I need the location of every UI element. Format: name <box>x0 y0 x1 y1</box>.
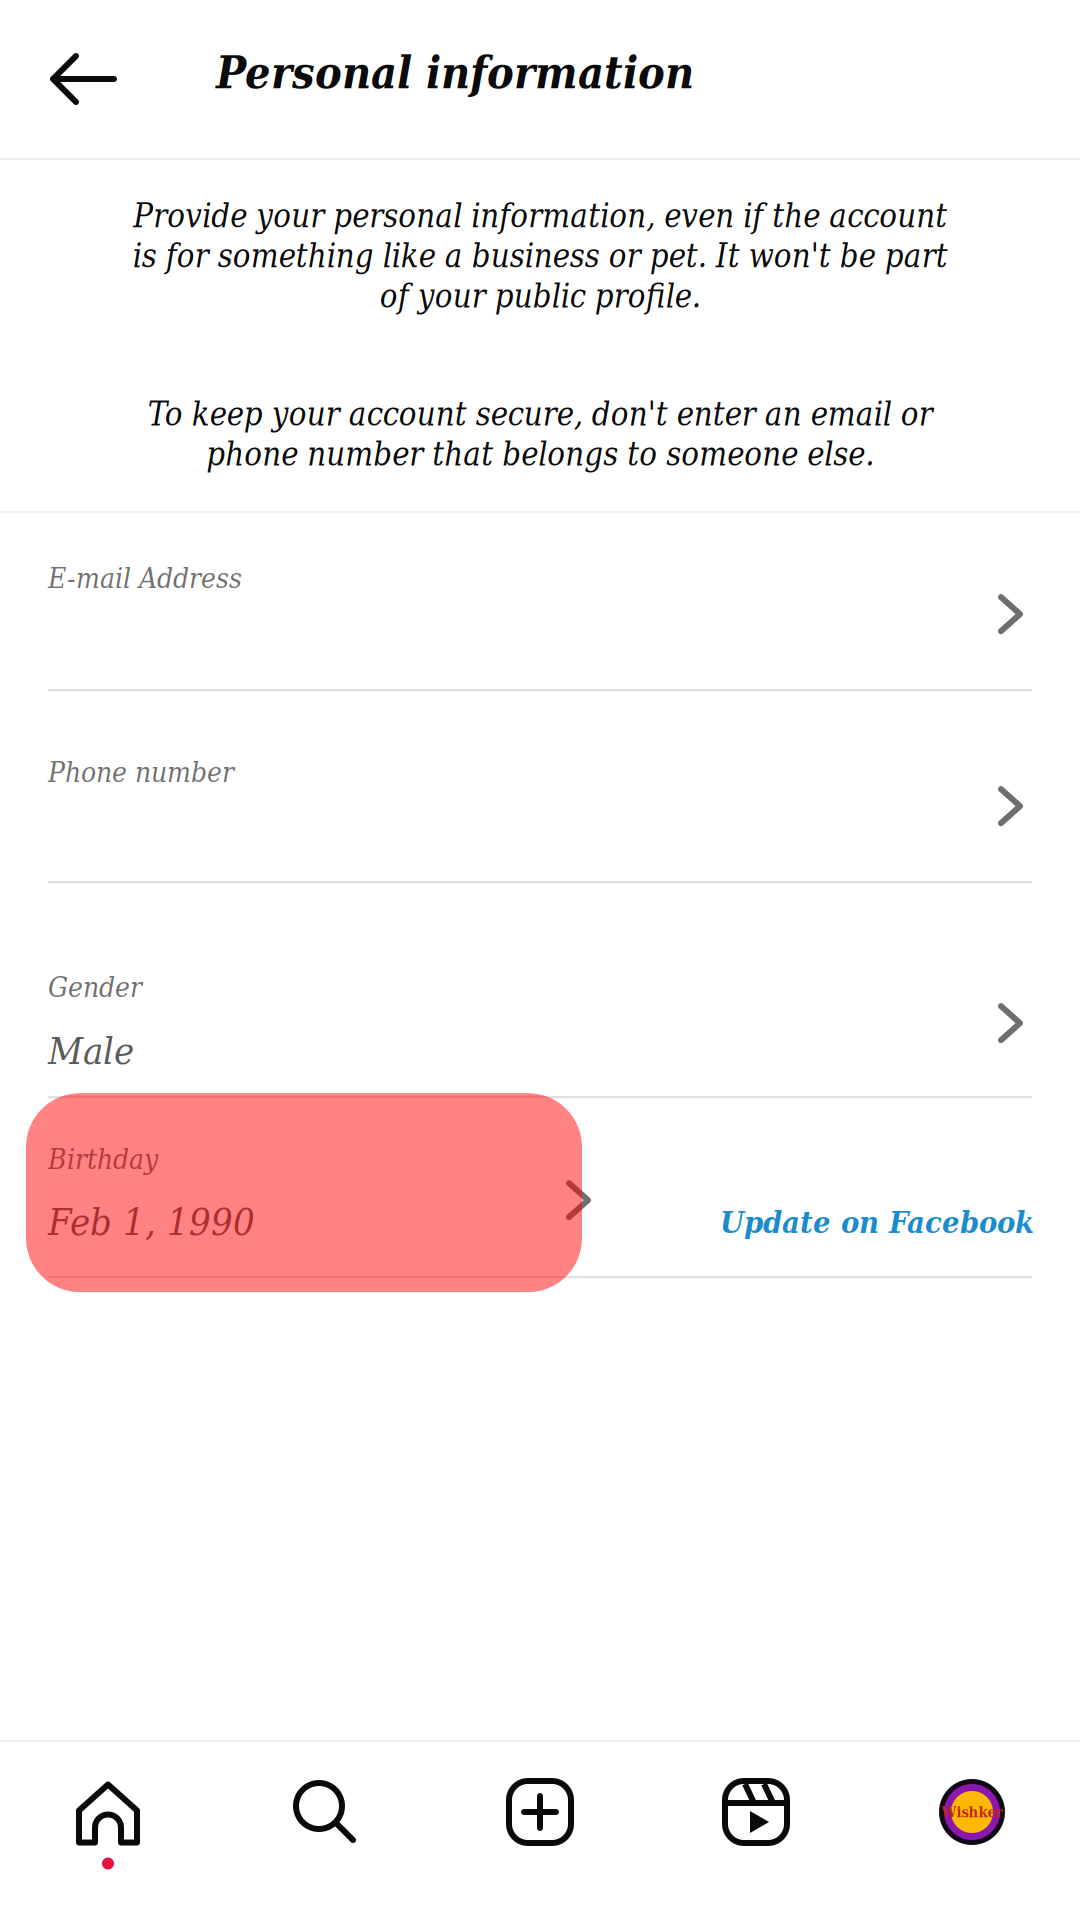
button[interactable]: Home <box>0 1742 216 1920</box>
staticText: E-mail Address <box>48 562 242 595</box>
button[interactable]: E-mail Address <box>0 513 1080 691</box>
button[interactable]: Back <box>0 0 210 158</box>
staticText: Personal information <box>216 46 694 99</box>
staticText: Phone number <box>48 756 234 789</box>
button[interactable]: Update on Facebook <box>620 1098 1080 1278</box>
button[interactable]: Profile <box>864 1742 1080 1920</box>
staticText: Male <box>48 1029 134 1073</box>
staticText: To keep your account secure, don't enter… <box>147 395 932 473</box>
button[interactable]: Search <box>216 1742 432 1920</box>
staticText: Update on Facebook <box>720 1204 1034 1240</box>
staticText: Birthday <box>48 1143 158 1176</box>
button[interactable]: Reels <box>648 1742 864 1920</box>
button[interactable]: Create new post <box>432 1742 648 1920</box>
staticText: Provide your personal information, even … <box>132 197 947 315</box>
staticText: Gender <box>48 971 142 1004</box>
button[interactable]: Gender <box>0 883 1080 1098</box>
button[interactable]: Birthday <box>0 1098 620 1278</box>
staticText: Feb 1, 1990 <box>48 1200 255 1244</box>
staticText: Wishker <box>941 1803 1002 1821</box>
button[interactable]: Phone number <box>0 691 1080 883</box>
